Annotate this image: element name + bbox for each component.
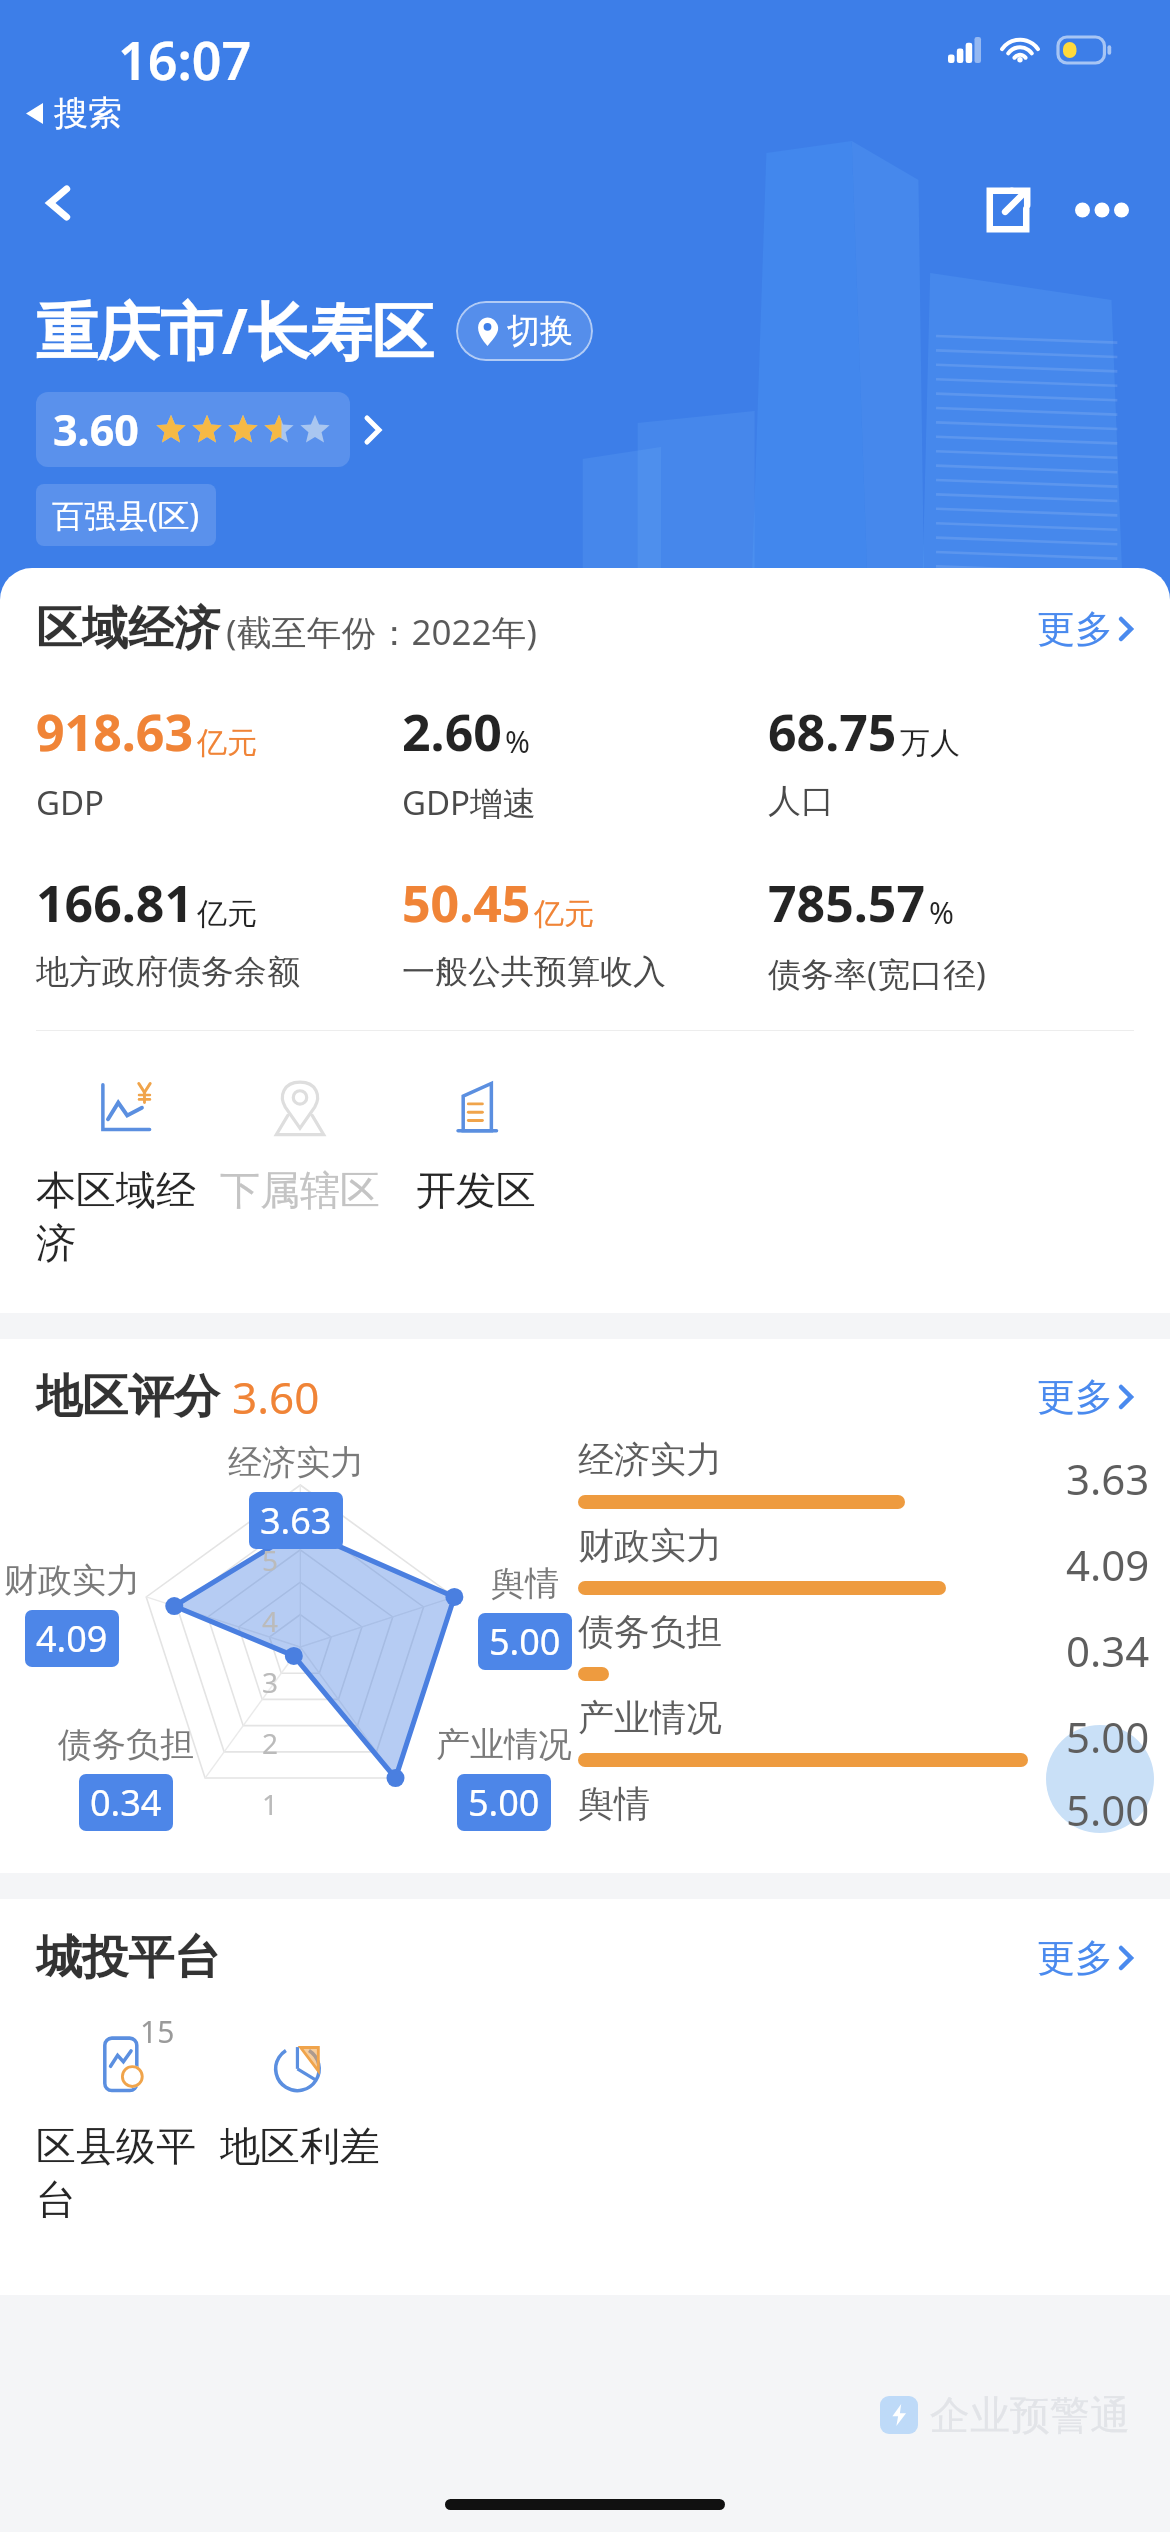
staticText: 开发区 [416, 1165, 536, 1215]
staticText: 50.45 [402, 869, 531, 937]
staticText: 地区利差 [220, 2121, 380, 2171]
button[interactable]: More options [1066, 174, 1138, 246]
button[interactable]: 918.63 [36, 698, 402, 825]
button[interactable]: 搜索 [26, 92, 122, 135]
staticText: 地方政府债务余额 [36, 951, 300, 993]
staticText: 3 [262, 1663, 279, 1701]
staticText: 产业情况 [436, 1723, 572, 1766]
staticText: 切换 [507, 310, 573, 352]
staticText: 经济实力 [228, 1441, 364, 1484]
staticText: GDP增速 [402, 780, 537, 825]
staticText: 5.00 [489, 1617, 561, 1666]
staticText: 亿元 [197, 895, 257, 933]
staticText: 166.81 [36, 869, 194, 937]
staticText: 0.34 [1066, 1622, 1150, 1679]
staticText: 债务率(宽口径) [768, 951, 986, 996]
staticText: 地区评分 [36, 1368, 220, 1426]
staticText: 2 [262, 1724, 279, 1762]
staticText: 财政实力 [578, 1523, 722, 1568]
staticText: 16:07 [118, 24, 252, 95]
staticText: 3.63 [260, 1496, 332, 1545]
staticText: 区域经济 [36, 600, 220, 658]
button[interactable]: 切换 [456, 301, 593, 361]
button[interactable]: Share [968, 170, 1048, 250]
staticText: 区县级平台 [36, 2121, 212, 2225]
button[interactable]: 3.60 [36, 392, 350, 467]
button[interactable]: 地区利差 [212, 2009, 388, 2171]
staticText: (截至年份：2022年) [226, 608, 538, 656]
button[interactable]: 50.45 [402, 869, 768, 993]
staticText: 债务负担 [58, 1723, 194, 1766]
staticText: % [505, 721, 530, 762]
button[interactable]: 更多 [1037, 1373, 1134, 1421]
staticText: 一般公共预算收入 [402, 951, 666, 993]
staticText: 亿元 [534, 895, 594, 933]
staticText: 918.63 [36, 698, 194, 766]
staticText: 重庆市/长寿区 [36, 288, 434, 373]
staticText: 更多 [1037, 1934, 1113, 1982]
staticText: 债务负担 [578, 1609, 722, 1654]
staticText: 经济实力 [578, 1437, 722, 1482]
staticText: 0.34 [90, 1778, 162, 1827]
staticText: 1 [262, 1785, 279, 1823]
staticText: 下属辖区 [220, 1165, 380, 1215]
button[interactable]: 166.81 [36, 869, 402, 993]
button[interactable]: 2.60 [402, 698, 768, 825]
button[interactable]: 785.57 [768, 869, 1134, 996]
button[interactable]: 百强县(区) [36, 484, 216, 546]
staticText: 15 [140, 2011, 175, 2052]
staticText: 企业预警通 [930, 2390, 1130, 2440]
staticText: 人口 [768, 780, 834, 822]
staticText: GDP [36, 780, 105, 825]
staticText: 68.75 [768, 698, 897, 766]
staticText: 舆情 [578, 1781, 650, 1826]
staticText: 5.00 [1066, 1708, 1150, 1765]
staticText: 本区域经济 [36, 1165, 212, 1269]
button[interactable]: Back [16, 160, 102, 246]
staticText: 5.00 [1066, 1781, 1150, 1831]
staticText: 3.60 [232, 1367, 320, 1427]
button[interactable]: 区县级平台 [36, 2009, 212, 2225]
button[interactable]: 下属辖区 [212, 1053, 388, 1215]
staticText: 百强县(区) [52, 493, 200, 537]
button[interactable]: 更多 [1037, 605, 1134, 653]
button[interactable]: 68.75 [768, 698, 1134, 822]
button[interactable]: 开发区 [388, 1053, 564, 1215]
staticText: 5.00 [468, 1778, 540, 1827]
staticText: 更多 [1037, 1373, 1113, 1421]
staticText: 4.09 [36, 1614, 108, 1663]
staticText: 万人 [900, 724, 960, 762]
staticText: 3.63 [1066, 1450, 1150, 1507]
button[interactable]: 更多 [1037, 1934, 1134, 1982]
staticText: 搜索 [54, 92, 122, 135]
staticText: 4 [262, 1602, 279, 1640]
staticText: 5 [262, 1541, 279, 1579]
staticText: 4.09 [1066, 1536, 1150, 1593]
staticText: 亿元 [197, 724, 257, 762]
staticText: 产业情况 [578, 1695, 722, 1740]
staticText: 更多 [1037, 605, 1113, 653]
button[interactable]: 本区域经济 [36, 1053, 212, 1269]
staticText: 舆情 [491, 1562, 559, 1605]
staticText: 财政实力 [4, 1559, 140, 1602]
staticText: % [929, 892, 954, 933]
staticText: 2.60 [402, 698, 502, 766]
staticText: 785.57 [768, 869, 926, 937]
staticText: 城投平台 [36, 1929, 220, 1987]
staticText: 3.60 [53, 400, 139, 459]
